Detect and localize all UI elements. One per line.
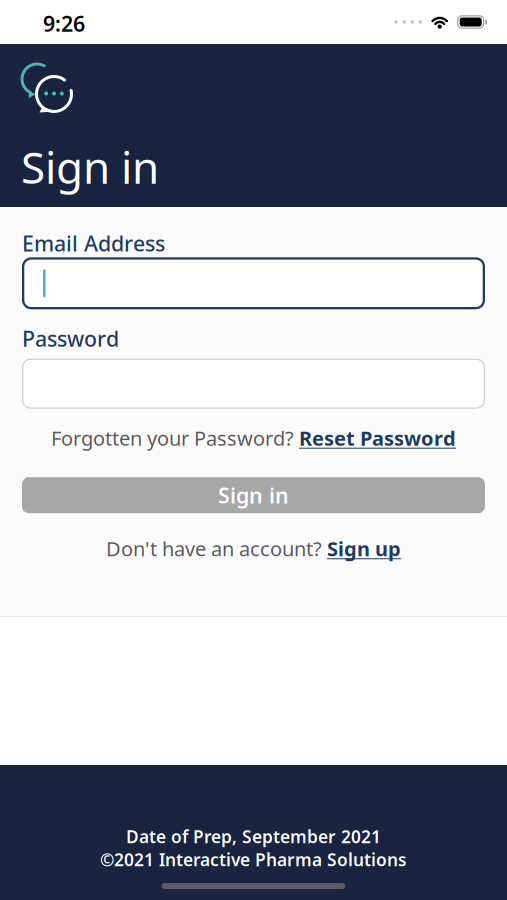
- staticText: Reset Password: [299, 425, 456, 451]
- staticText: Sign in: [21, 138, 159, 196]
- staticText: 9:26: [43, 9, 85, 38]
- staticText: Sign up: [327, 535, 401, 562]
- button[interactable]: [22, 359, 485, 409]
- button[interactable]: [22, 257, 485, 309]
- button[interactable]: Sign up: [327, 535, 401, 562]
- button[interactable]: Reset Password: [299, 425, 456, 451]
- staticText: Email Address: [22, 229, 165, 257]
- staticText: Sign in: [218, 481, 289, 509]
- staticText: Date of Prep, September 2021: [126, 825, 381, 848]
- staticText: Password: [22, 324, 119, 353]
- staticText: Forgotten your Password?: [51, 425, 294, 451]
- staticText: ©2021 Interactive Pharma Solutions: [100, 848, 407, 871]
- staticText: Don't have an account?: [106, 535, 322, 562]
- button[interactable]: Sign in: [22, 477, 485, 513]
